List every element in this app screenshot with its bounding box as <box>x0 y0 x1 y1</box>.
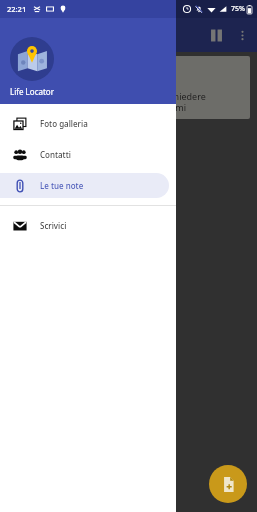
button[interactable]: UNIVERSITÀ <box>7 56 250 119</box>
staticText: Via Canalgrande Modena <box>15 77 94 87</box>
button[interactable]: Map <box>202 21 230 49</box>
staticText: Le tue note <box>40 180 84 191</box>
staticText: 75% <box>231 4 245 14</box>
staticText: Scrivici <box>40 220 67 231</box>
staticText: 22:21 <box>7 4 27 14</box>
staticText: Foto galleria <box>40 118 88 129</box>
button[interactable]: Contatti <box>0 142 169 167</box>
button[interactable]: Le tue note <box>0 173 169 198</box>
staticText: Ricordati di andare in segreteria per ch… <box>15 90 242 114</box>
button[interactable]: Scrivici <box>0 213 169 238</box>
staticText: UNIVERSITÀ <box>15 61 81 76</box>
staticText: Life Locator <box>10 86 54 97</box>
button[interactable]: More options <box>230 23 254 47</box>
button[interactable]: Add note <box>209 465 247 503</box>
staticText: Contatti <box>40 149 71 160</box>
button[interactable]: Foto galleria <box>0 111 169 136</box>
